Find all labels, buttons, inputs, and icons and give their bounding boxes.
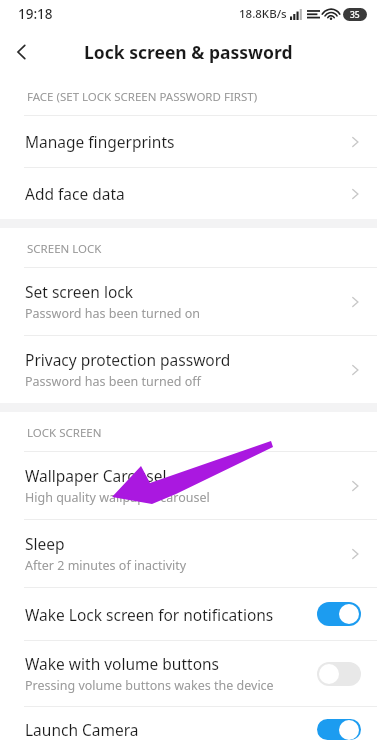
staticText: Privacy protection password <box>25 349 231 370</box>
button[interactable]: Manage fingerprints <box>0 116 377 167</box>
button[interactable]: Add face data <box>0 168 377 219</box>
staticText: Set screen lock <box>25 281 134 302</box>
staticText: 18.8KB/s <box>239 6 287 22</box>
button[interactable]: Back <box>0 30 44 74</box>
staticText: Pressing volume buttons wakes the device <box>25 677 274 694</box>
staticText: SCREEN LOCK <box>27 241 102 257</box>
button[interactable]: Wallpaper Carousel <box>0 452 377 519</box>
staticText: 35 <box>350 9 360 21</box>
button[interactable]: Launch Camera <box>0 707 377 752</box>
staticText: After 2 minutes of inactivity <box>25 557 187 574</box>
staticText: LOCK SCREEN <box>27 425 102 441</box>
staticText: Password has been turned on <box>25 305 200 322</box>
staticText: Sleep <box>25 533 65 554</box>
staticText: High quality wallpaper carousel <box>25 489 210 506</box>
staticText: Launch Camera <box>25 719 139 740</box>
button[interactable]: Set screen lock <box>0 268 377 335</box>
staticText: 19:18 <box>18 5 53 23</box>
button[interactable]: Toggle off <box>317 662 361 686</box>
button[interactable]: Privacy protection password <box>0 336 377 403</box>
staticText: Lock screen & password <box>84 40 293 64</box>
staticText: FACE (SET LOCK SCREEN PASSWORD FIRST) <box>27 89 258 105</box>
staticText: Wallpaper Carousel <box>25 465 167 486</box>
button[interactable]: Toggle on <box>317 602 361 626</box>
staticText: Manage fingerprints <box>25 131 175 152</box>
button[interactable]: Sleep <box>0 520 377 587</box>
staticText: Wake with volume buttons <box>25 653 220 674</box>
staticText: Password has been turned off <box>25 373 201 390</box>
button[interactable]: Wake with volume buttons <box>0 641 377 706</box>
staticText: Wake Lock screen for notifications <box>25 604 274 625</box>
button[interactable]: Wake Lock screen for notifications <box>0 588 377 640</box>
staticText: Add face data <box>25 183 125 204</box>
button[interactable]: Toggle on <box>317 719 361 740</box>
